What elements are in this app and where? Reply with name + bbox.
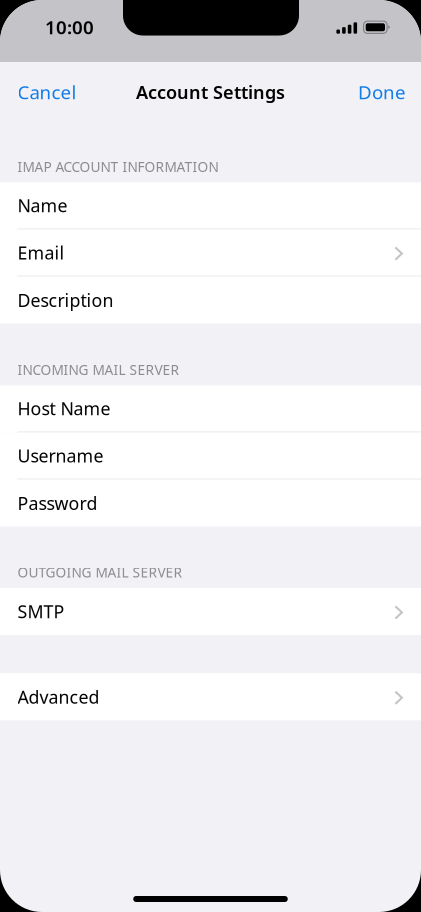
staticText: Host Name <box>17 396 110 421</box>
staticText: Advanced <box>17 685 99 709</box>
staticText: Cancel <box>17 79 76 105</box>
staticText: Email <box>17 240 64 265</box>
button[interactable]: Host Name <box>0 385 421 432</box>
staticText: IMAP ACCOUNT INFORMATION <box>17 157 218 176</box>
staticText: SMTP <box>17 599 64 624</box>
button[interactable]: SMTP <box>0 588 421 635</box>
button[interactable]: Username <box>0 432 421 480</box>
staticText: Password <box>17 491 97 515</box>
button[interactable]: Description <box>0 277 421 324</box>
button[interactable]: Done <box>346 62 421 122</box>
button[interactable]: Advanced <box>0 673 421 720</box>
staticText: OUTGOING MAIL SERVER <box>17 563 182 581</box>
button[interactable]: Name <box>0 182 421 229</box>
staticText: Description <box>17 288 113 312</box>
button[interactable]: Email <box>0 229 421 277</box>
staticText: Done <box>358 79 406 105</box>
staticText: Username <box>17 443 103 468</box>
staticText: INCOMING MAIL SERVER <box>17 360 179 379</box>
staticText: Name <box>17 193 67 218</box>
button[interactable]: Password <box>0 480 421 527</box>
staticText: Account Settings <box>136 80 285 104</box>
button[interactable]: Cancel <box>0 62 88 122</box>
staticText: 10:00 <box>45 14 94 40</box>
